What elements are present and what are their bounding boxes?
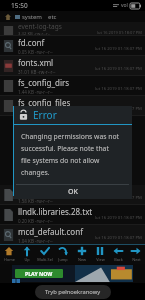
- staticText: 3.32 KB -rw-r--r--: [18, 31, 51, 35]
- staticText: Jump: [58, 257, 68, 262]
- staticText: successful. Please note that some: [21, 144, 124, 153]
- staticText: Error: [33, 108, 57, 122]
- staticText: fd.conf: [18, 37, 45, 48]
- button[interactable]: OK: [13, 185, 132, 199]
- button[interactable]: system: [15, 13, 42, 21]
- button[interactable]: ld.config.vndk_lite.txt: [0, 185, 145, 204]
- button[interactable]: fs_config_files: [0, 96, 145, 115]
- staticText: 0.05 KB -rw-r--r--: [18, 49, 53, 55]
- staticText: lut 16 2019 01:18:07 PM: [95, 235, 142, 241]
- staticText: Changing permissions was not: [21, 132, 120, 141]
- staticText: Next: [132, 257, 141, 262]
- button[interactable]: Jump: [54, 246, 72, 262]
- staticText: Tryb pełnoekranowy: [45, 288, 101, 296]
- button[interactable]: fs_config_dirs: [0, 76, 145, 95]
- staticText: lut 16 2019 01:18:07 PM: [95, 215, 142, 221]
- staticText: Home: [4, 257, 15, 262]
- staticText: PLAY NOW: [25, 270, 53, 277]
- button[interactable]: Up: [18, 246, 36, 262]
- staticText: file systems do not allow permission: [21, 156, 124, 165]
- staticText: OK: [68, 187, 78, 197]
- button[interactable]: Back: [109, 246, 127, 262]
- staticText: fs_config_dirs: [18, 77, 70, 88]
- staticText: 0.20 KB -rw-r--r--: [18, 218, 53, 224]
- button[interactable]: PLAY NOW: [12, 265, 133, 282]
- staticText: Up: [24, 257, 30, 262]
- staticText: Back: [114, 257, 123, 262]
- staticText: changes.: [21, 168, 50, 177]
- staticText: lut 16 2019 01:18:07 PM: [95, 66, 142, 72]
- staticText: View: [96, 257, 105, 262]
- staticText: lut 16 2019 01:18:07 PM: [95, 46, 142, 52]
- button[interactable]: Home: [0, 246, 18, 262]
- staticText: llndk.libraries.28.txt: [18, 206, 93, 217]
- staticText: mcd_default.conf: [18, 226, 83, 237]
- staticText: lut 16 2019 01:18:07 PM: [95, 195, 142, 201]
- button[interactable]: Tryb pełnoekranowy: [35, 285, 111, 299]
- button[interactable]: mcd_default.conf: [0, 225, 145, 244]
- staticText: 15:50: [11, 1, 28, 10]
- staticText: system: [22, 13, 42, 21]
- button[interactable]: fonts.xml: [0, 56, 145, 75]
- staticText: 1.11 KB -rw-r--r--: [18, 109, 53, 115]
- staticText: Multi-Sel: [37, 257, 53, 262]
- staticText: lut 16 2019 01:18:07 PM: [95, 106, 142, 112]
- staticText: lut 16 2019 01:18:07 PM: [97, 30, 142, 35]
- button[interactable]: fd.conf: [0, 36, 145, 55]
- staticText: 1.04 KB -rw-r--r--: [18, 238, 53, 244]
- staticText: 1.58 KB -rw-r--r--: [18, 198, 53, 204]
- staticText: lut 16 2019 01:18:07 PM: [95, 86, 142, 92]
- staticText: fs_config_files: [18, 97, 71, 108]
- button[interactable]: Next: [127, 246, 145, 262]
- button[interactable]: View: [91, 246, 109, 262]
- staticText: New: [78, 257, 86, 262]
- button[interactable]: Home: [3, 12, 12, 21]
- staticText: fonts.xml: [18, 57, 54, 68]
- button[interactable]: etc: [48, 13, 57, 21]
- button[interactable]: llndk.libraries.28.txt: [0, 205, 145, 224]
- staticText: vol: [121, 2, 128, 9]
- staticText: 31.01 KB -rw-r--r--: [18, 69, 56, 75]
- staticText: 1.44 KB -rw-r--r--: [18, 89, 53, 95]
- button[interactable]: New: [73, 246, 91, 262]
- button[interactable]: Multi-Sel: [36, 246, 54, 262]
- staticText: event-log-tags: [18, 22, 62, 31]
- staticText: ld.config.vndk_lite.txt: [18, 186, 95, 197]
